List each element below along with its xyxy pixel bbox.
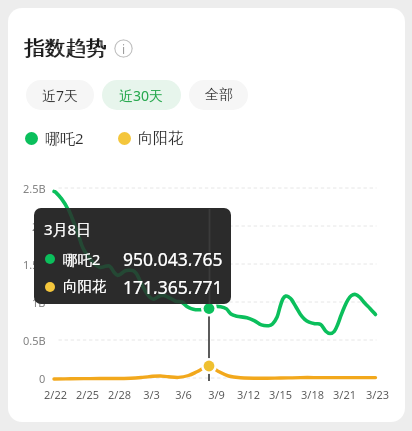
staticText: 2B xyxy=(32,219,46,234)
staticText: 2.5B xyxy=(23,181,46,196)
staticText: 2/22 xyxy=(44,387,67,402)
staticText: 指数趋势 xyxy=(24,35,106,61)
staticText: 0 xyxy=(39,371,46,386)
staticText: 3/21 xyxy=(333,387,356,402)
staticText: 950,043,765 xyxy=(123,247,223,266)
staticText: 向阳花 xyxy=(63,277,107,295)
staticText: 近30天 xyxy=(119,86,164,105)
button[interactable]: 近7天 xyxy=(26,80,94,110)
staticText: 3/6 xyxy=(175,387,192,402)
staticText: 2/28 xyxy=(108,387,131,402)
staticText: 3/18 xyxy=(301,387,324,402)
staticText: 3/12 xyxy=(237,387,260,402)
staticText: 3/3 xyxy=(143,387,160,402)
button[interactable]: 哪吒2 xyxy=(25,128,84,148)
staticText: 哪吒2 xyxy=(63,249,101,268)
staticText: 哪吒2 xyxy=(45,128,84,148)
button[interactable]: 向阳花 xyxy=(118,129,183,148)
staticText: 全部 xyxy=(205,86,233,104)
staticText: 指数趋势 xyxy=(25,35,107,61)
button[interactable]: 说明 xyxy=(114,39,133,58)
staticText: 1.5B xyxy=(23,257,46,272)
staticText: 3/15 xyxy=(269,387,292,402)
staticText: 2/25 xyxy=(76,387,99,402)
staticText: i xyxy=(122,41,126,57)
staticText: 171,365,771 xyxy=(123,275,223,294)
staticText: 3月8日 xyxy=(44,219,92,239)
staticText: 3/9 xyxy=(208,387,225,402)
staticText: 0.5B xyxy=(23,333,46,348)
staticText: 向阳花 xyxy=(138,129,183,148)
staticText: 1B xyxy=(32,295,46,310)
button[interactable]: 近30天 xyxy=(102,80,181,110)
staticText: 3/23 xyxy=(366,387,389,402)
button[interactable]: 全部 xyxy=(189,80,248,110)
staticText: 近7天 xyxy=(42,86,79,105)
